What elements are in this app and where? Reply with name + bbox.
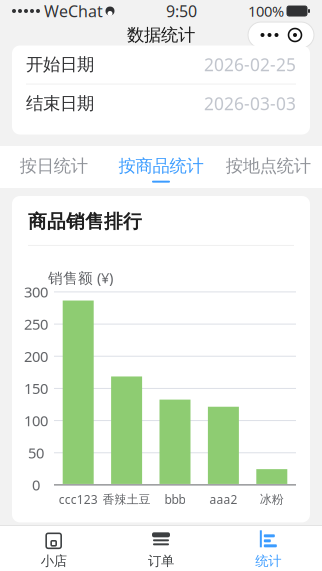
staticText: 250 [24,314,48,334]
staticText: 订单 [148,553,174,569]
button[interactable]: 按地点统计 [215,146,322,188]
button[interactable]: 更多 [248,22,314,48]
staticText: 50 [28,443,44,462]
staticText: 香辣土豆 [103,492,151,507]
button[interactable]: 开始日期 [12,45,310,83]
staticText: ccc123 [59,491,98,507]
staticText: 9:50 [166,0,197,22]
staticText: 150 [24,379,48,398]
staticText: 按商品统计 [118,155,203,177]
staticText: 2026-02-25 [204,53,296,76]
staticText: 100% [248,1,284,21]
staticText: WeChat [44,0,103,22]
staticText: 小店 [41,553,67,569]
button[interactable]: 订单 [107,526,215,571]
staticText: aaa2 [209,491,237,507]
button[interactable]: 按日统计 [0,146,107,188]
button[interactable]: 小店 [0,526,107,571]
staticText: 开始日期 [26,54,94,75]
staticText: 300 [24,282,48,302]
staticText: 统计 [255,553,281,569]
button[interactable]: 统计 [215,526,322,571]
staticText: bbb [164,491,185,507]
button[interactable]: 结束日期 [12,84,310,122]
staticText: 按日统计 [20,155,88,177]
staticText: 数据统计 [127,24,195,46]
staticText: 冰粉 [260,492,284,507]
button[interactable]: 按商品统计 [107,146,215,188]
staticText: 2026-03-03 [204,92,296,115]
staticText: 100 [24,411,48,430]
staticText: 0 [32,475,40,495]
staticText: 200 [24,346,48,366]
staticText: 结束日期 [26,93,94,114]
staticText: 销售额 (¥) [48,268,113,287]
staticText: 商品销售排行 [28,210,142,233]
staticText: 按地点统计 [226,155,311,177]
